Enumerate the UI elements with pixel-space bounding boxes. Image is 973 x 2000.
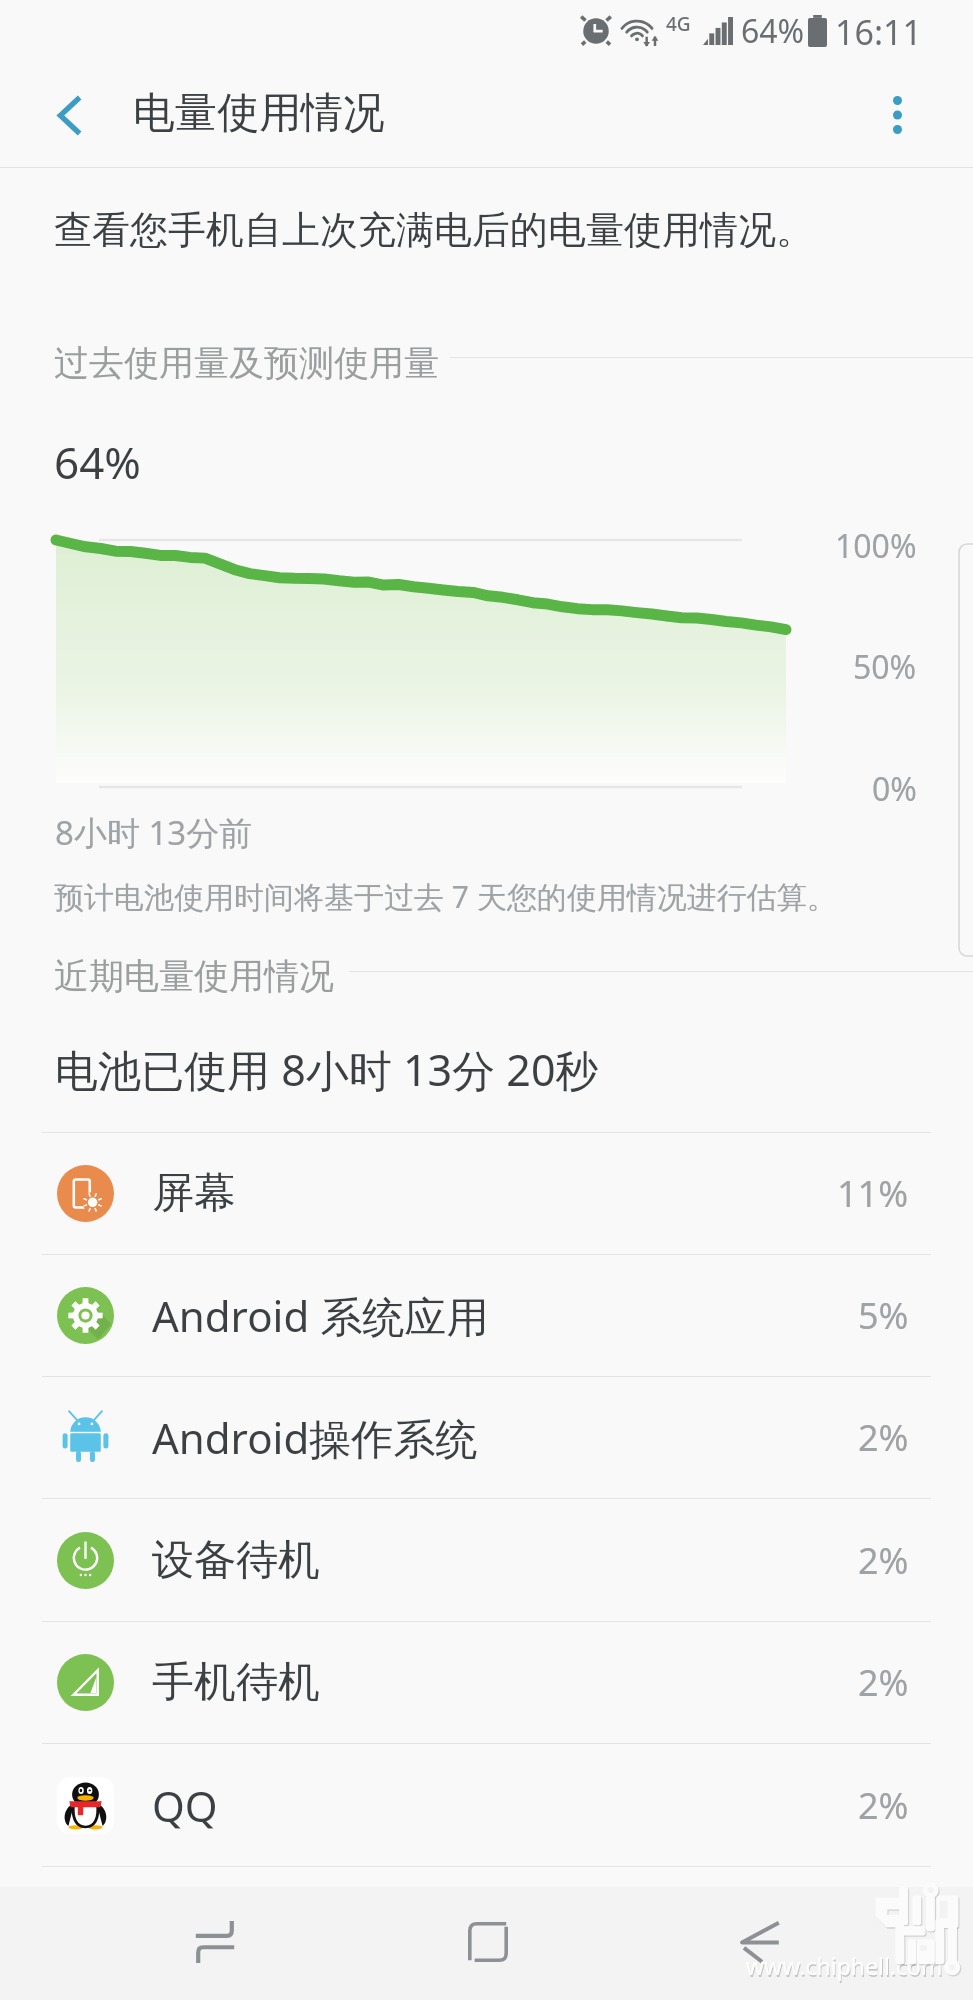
staticText: 屏幕 xyxy=(152,1167,236,1220)
staticText: www.chiphell.com xyxy=(746,1950,943,1981)
staticText: 64% xyxy=(741,9,805,53)
staticText: 64% xyxy=(54,432,141,492)
staticText: 11% xyxy=(837,1169,909,1218)
staticText: 2% xyxy=(858,1658,909,1707)
button[interactable]: Android 系统应用 xyxy=(0,1255,973,1376)
staticText: 50% xyxy=(853,645,917,689)
button[interactable]: Back xyxy=(695,1887,825,2000)
button[interactable]: Back xyxy=(30,76,108,154)
button[interactable]: Android操作系统 xyxy=(0,1377,973,1498)
staticText: 手机待机 xyxy=(152,1656,320,1709)
button[interactable]: Home xyxy=(423,1887,553,2000)
staticText: 100% xyxy=(835,524,917,568)
button[interactable]: 设备待机 xyxy=(0,1499,973,1621)
staticText: 16:11 xyxy=(835,9,922,53)
button[interactable]: 屏幕 xyxy=(0,1133,973,1254)
staticText: 过去使用量及预测使用量 xyxy=(54,341,439,385)
staticText: Android 系统应用 xyxy=(152,1287,489,1344)
staticText: 近期电量使用情况 xyxy=(54,954,334,998)
button[interactable]: QQ xyxy=(0,1744,973,1866)
staticText: 电量使用情况 xyxy=(133,87,385,140)
button[interactable]: 手机待机 xyxy=(0,1622,973,1743)
staticText: www.chiphell.com xyxy=(747,1952,944,1983)
staticText: 5% xyxy=(858,1291,909,1340)
staticText: 2% xyxy=(858,1536,909,1585)
staticText: 2% xyxy=(858,1413,909,1462)
button[interactable]: Recents xyxy=(150,1887,280,2000)
staticText: 电池已使用 8小时 13分 20秒 xyxy=(55,1040,599,1099)
staticText: QQ xyxy=(152,1777,218,1834)
staticText: 0% xyxy=(872,767,917,811)
staticText: 4G xyxy=(666,11,691,37)
button[interactable]: More options xyxy=(858,76,936,154)
staticText: Android操作系统 xyxy=(152,1409,478,1466)
staticText: 设备待机 xyxy=(152,1534,320,1587)
staticText: 8小时 13分前 xyxy=(55,810,253,855)
staticText: 预计电池使用时间将基于过去 7 天您的使用情况进行估算。 xyxy=(54,876,837,917)
staticText: 2% xyxy=(858,1781,909,1830)
staticText: 查看您手机自上次充满电后的电量使用情况。 xyxy=(54,206,814,254)
